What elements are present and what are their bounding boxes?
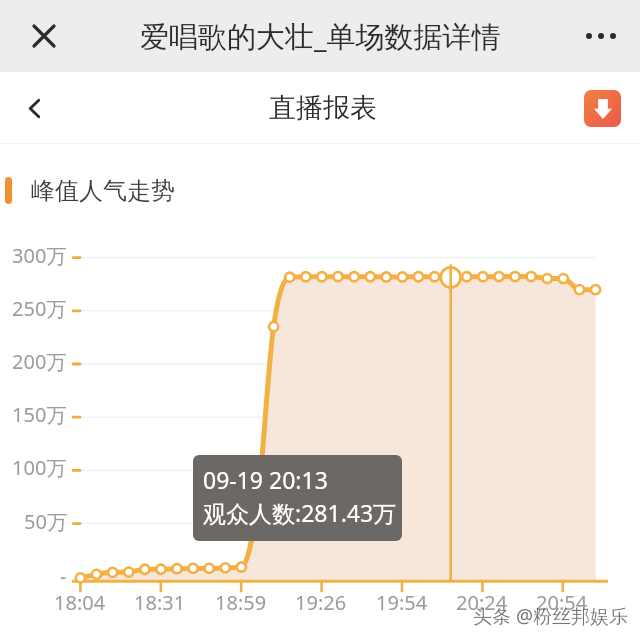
staticText: 50万 xyxy=(24,508,67,535)
staticText: 200万 xyxy=(12,348,67,375)
staticText: 300万 xyxy=(12,242,67,269)
staticText: 18:31 xyxy=(134,589,186,616)
staticText: 09-19 20:13 xyxy=(203,464,328,495)
staticText: 100万 xyxy=(12,454,67,481)
staticText: 20:54 xyxy=(536,589,588,616)
staticText: 爱唱歌的大壮_单场数据详情 xyxy=(140,16,501,56)
button[interactable]: Close xyxy=(25,17,63,55)
staticText: 头条 @粉丝邦娱乐 xyxy=(473,603,629,629)
staticText: 峰值人气走势 xyxy=(31,176,175,206)
staticText: 250万 xyxy=(12,295,67,322)
staticText: 19:26 xyxy=(295,589,347,616)
staticText: 直播报表 xyxy=(269,91,377,125)
button[interactable]: Back xyxy=(13,87,55,129)
staticText: 观众人数:281.43万 xyxy=(203,497,397,528)
staticText: 18:04 xyxy=(54,589,106,616)
staticText: - xyxy=(60,563,67,590)
staticText: 18:59 xyxy=(215,589,267,616)
button[interactable]: Download report xyxy=(584,90,621,127)
staticText: 150万 xyxy=(12,401,67,428)
staticText: 20:24 xyxy=(456,589,508,616)
button[interactable]: More options xyxy=(580,13,626,59)
staticText: 19:54 xyxy=(376,589,428,616)
